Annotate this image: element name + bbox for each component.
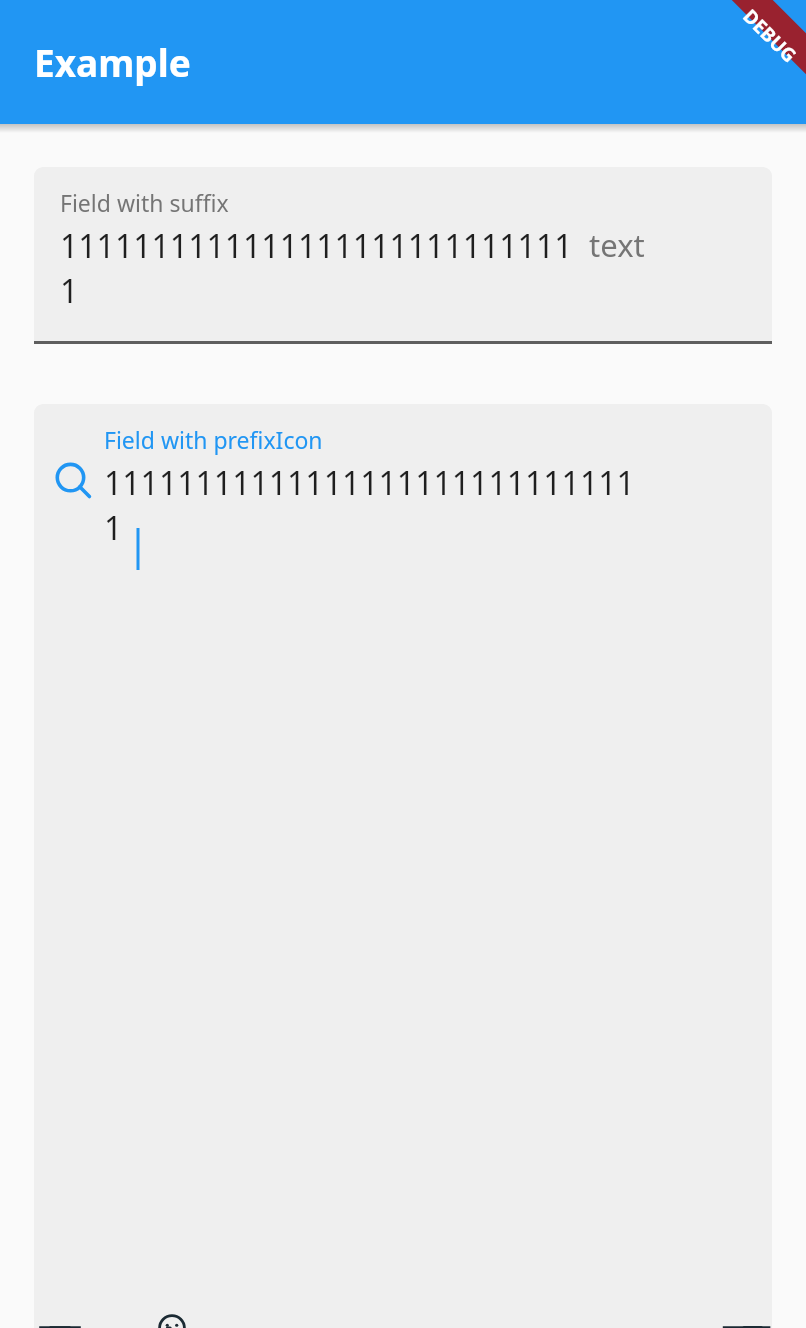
staticText: DEBUG <box>737 3 803 69</box>
other: Search <box>52 460 96 504</box>
staticText: 1111111111111111111111111111 1 <box>60 224 573 313</box>
staticText: Example <box>34 37 191 87</box>
staticText: Field with suffix <box>60 187 229 218</box>
button[interactable]: Field with suffix <box>34 167 772 341</box>
staticText: text <box>573 224 645 266</box>
staticText: Field with prefixIcon <box>104 424 323 455</box>
staticText: 11111111111111111111111111111 1 <box>104 461 635 550</box>
button[interactable]: Search <box>34 404 772 1328</box>
